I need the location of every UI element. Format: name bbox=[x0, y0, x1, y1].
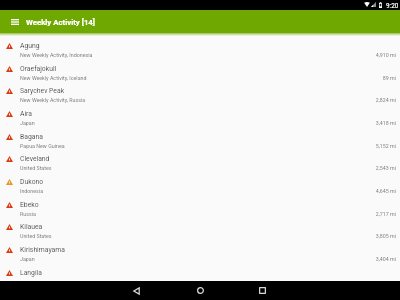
staticText: 89 mi bbox=[382, 75, 396, 81]
staticText: Aira bbox=[20, 110, 32, 118]
staticText: Langila bbox=[20, 269, 42, 277]
staticText: United States bbox=[20, 165, 52, 171]
button[interactable]: Cleveland bbox=[0, 147, 400, 170]
button[interactable]: Ebeko bbox=[0, 193, 400, 216]
staticText: Russia bbox=[20, 211, 36, 217]
staticText: Bagana bbox=[20, 133, 43, 141]
staticText: 9:20 bbox=[386, 2, 399, 10]
staticText: Papua New Guinea bbox=[20, 143, 65, 149]
staticText: Kilauea bbox=[20, 223, 43, 231]
staticText: Sarychev Peak bbox=[20, 87, 65, 95]
staticText: New Weekly Activity, Indonesia bbox=[20, 52, 93, 58]
staticText: 5,152 mi bbox=[375, 143, 396, 149]
button[interactable]: Back bbox=[116, 281, 156, 300]
staticText: Dukono bbox=[20, 178, 44, 186]
staticText: Indonesia bbox=[20, 188, 44, 194]
button[interactable]: Recent apps bbox=[242, 281, 282, 300]
staticText: 3,418 mi bbox=[375, 120, 396, 126]
staticText: Agung bbox=[20, 42, 40, 50]
button[interactable]: Dukono bbox=[0, 170, 400, 193]
staticText: 2,717 mi bbox=[375, 211, 396, 217]
button[interactable]: Agung bbox=[0, 34, 400, 57]
staticText: United States bbox=[20, 233, 52, 239]
staticText: 4,910 mi bbox=[375, 52, 396, 58]
staticText: Ebeko bbox=[20, 201, 39, 209]
button[interactable]: Open navigation drawer bbox=[0, 10, 26, 33]
button[interactable]: Kirishimayama bbox=[0, 238, 400, 261]
staticText: New Weekly Activity, Iceland bbox=[20, 75, 87, 81]
staticText: Oraefajokull bbox=[20, 65, 57, 73]
staticText: 3,805 mi bbox=[375, 233, 396, 239]
button[interactable]: Langila bbox=[0, 261, 400, 284]
button[interactable]: Home bbox=[180, 281, 220, 300]
button[interactable]: Oraefajokull bbox=[0, 57, 400, 80]
button[interactable]: Aira bbox=[0, 102, 400, 125]
staticText: Cleveland bbox=[20, 155, 50, 163]
staticText: 2,543 mi bbox=[375, 165, 396, 171]
button[interactable]: Kilauea bbox=[0, 215, 400, 238]
button[interactable]: Sarychev Peak bbox=[0, 79, 400, 102]
staticText: 3,404 mi bbox=[375, 256, 396, 262]
staticText: Weekly Activity [14] bbox=[26, 18, 95, 27]
staticText: Japan bbox=[20, 120, 35, 126]
staticText: New Weekly Activity, Russia bbox=[20, 97, 86, 103]
button[interactable]: Bagana bbox=[0, 125, 400, 148]
staticText: 2,824 mi bbox=[375, 97, 396, 103]
staticText: 4,645 mi bbox=[375, 188, 396, 194]
staticText: Japan bbox=[20, 256, 35, 262]
staticText: Kirishimayama bbox=[20, 246, 65, 254]
